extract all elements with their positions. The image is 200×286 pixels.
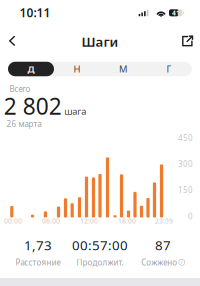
staticText: 450 xyxy=(178,133,193,143)
staticText: Г xyxy=(166,63,171,75)
button[interactable]: Back xyxy=(0,29,24,53)
button[interactable]: Д xyxy=(8,62,54,76)
staticText: 150 xyxy=(178,185,193,195)
staticText: 12:00 xyxy=(80,217,98,225)
button[interactable]: Г xyxy=(146,62,192,76)
staticText: 0 xyxy=(188,211,193,222)
staticText: 23:59 xyxy=(155,217,173,225)
staticText: 00:00 xyxy=(4,217,22,225)
staticText: 41 xyxy=(172,8,180,17)
staticText: Всего xyxy=(9,84,30,94)
staticText: Сожжено xyxy=(141,257,177,268)
staticText: 00:57:00 xyxy=(72,236,128,254)
staticText: М xyxy=(119,63,127,75)
staticText: 06:00 xyxy=(42,217,60,225)
staticText: шага xyxy=(64,105,86,117)
staticText: 18:00 xyxy=(118,217,136,225)
button[interactable]: Share xyxy=(175,29,199,53)
staticText: Продолжит. xyxy=(76,257,123,268)
staticText: 300 xyxy=(178,159,193,169)
staticText: Шаги xyxy=(81,33,118,50)
staticText: 87 xyxy=(155,236,171,254)
staticText: Н xyxy=(73,63,80,75)
button[interactable]: Н xyxy=(54,62,100,76)
staticText: 10:11 xyxy=(19,4,50,20)
staticText: 2 802 xyxy=(4,91,62,121)
staticText: 1,73 xyxy=(24,236,52,254)
button[interactable]: М xyxy=(100,62,146,76)
staticText: Расстояние xyxy=(15,257,60,268)
staticText: Д xyxy=(27,63,34,75)
staticText: 26 марта xyxy=(6,119,41,129)
